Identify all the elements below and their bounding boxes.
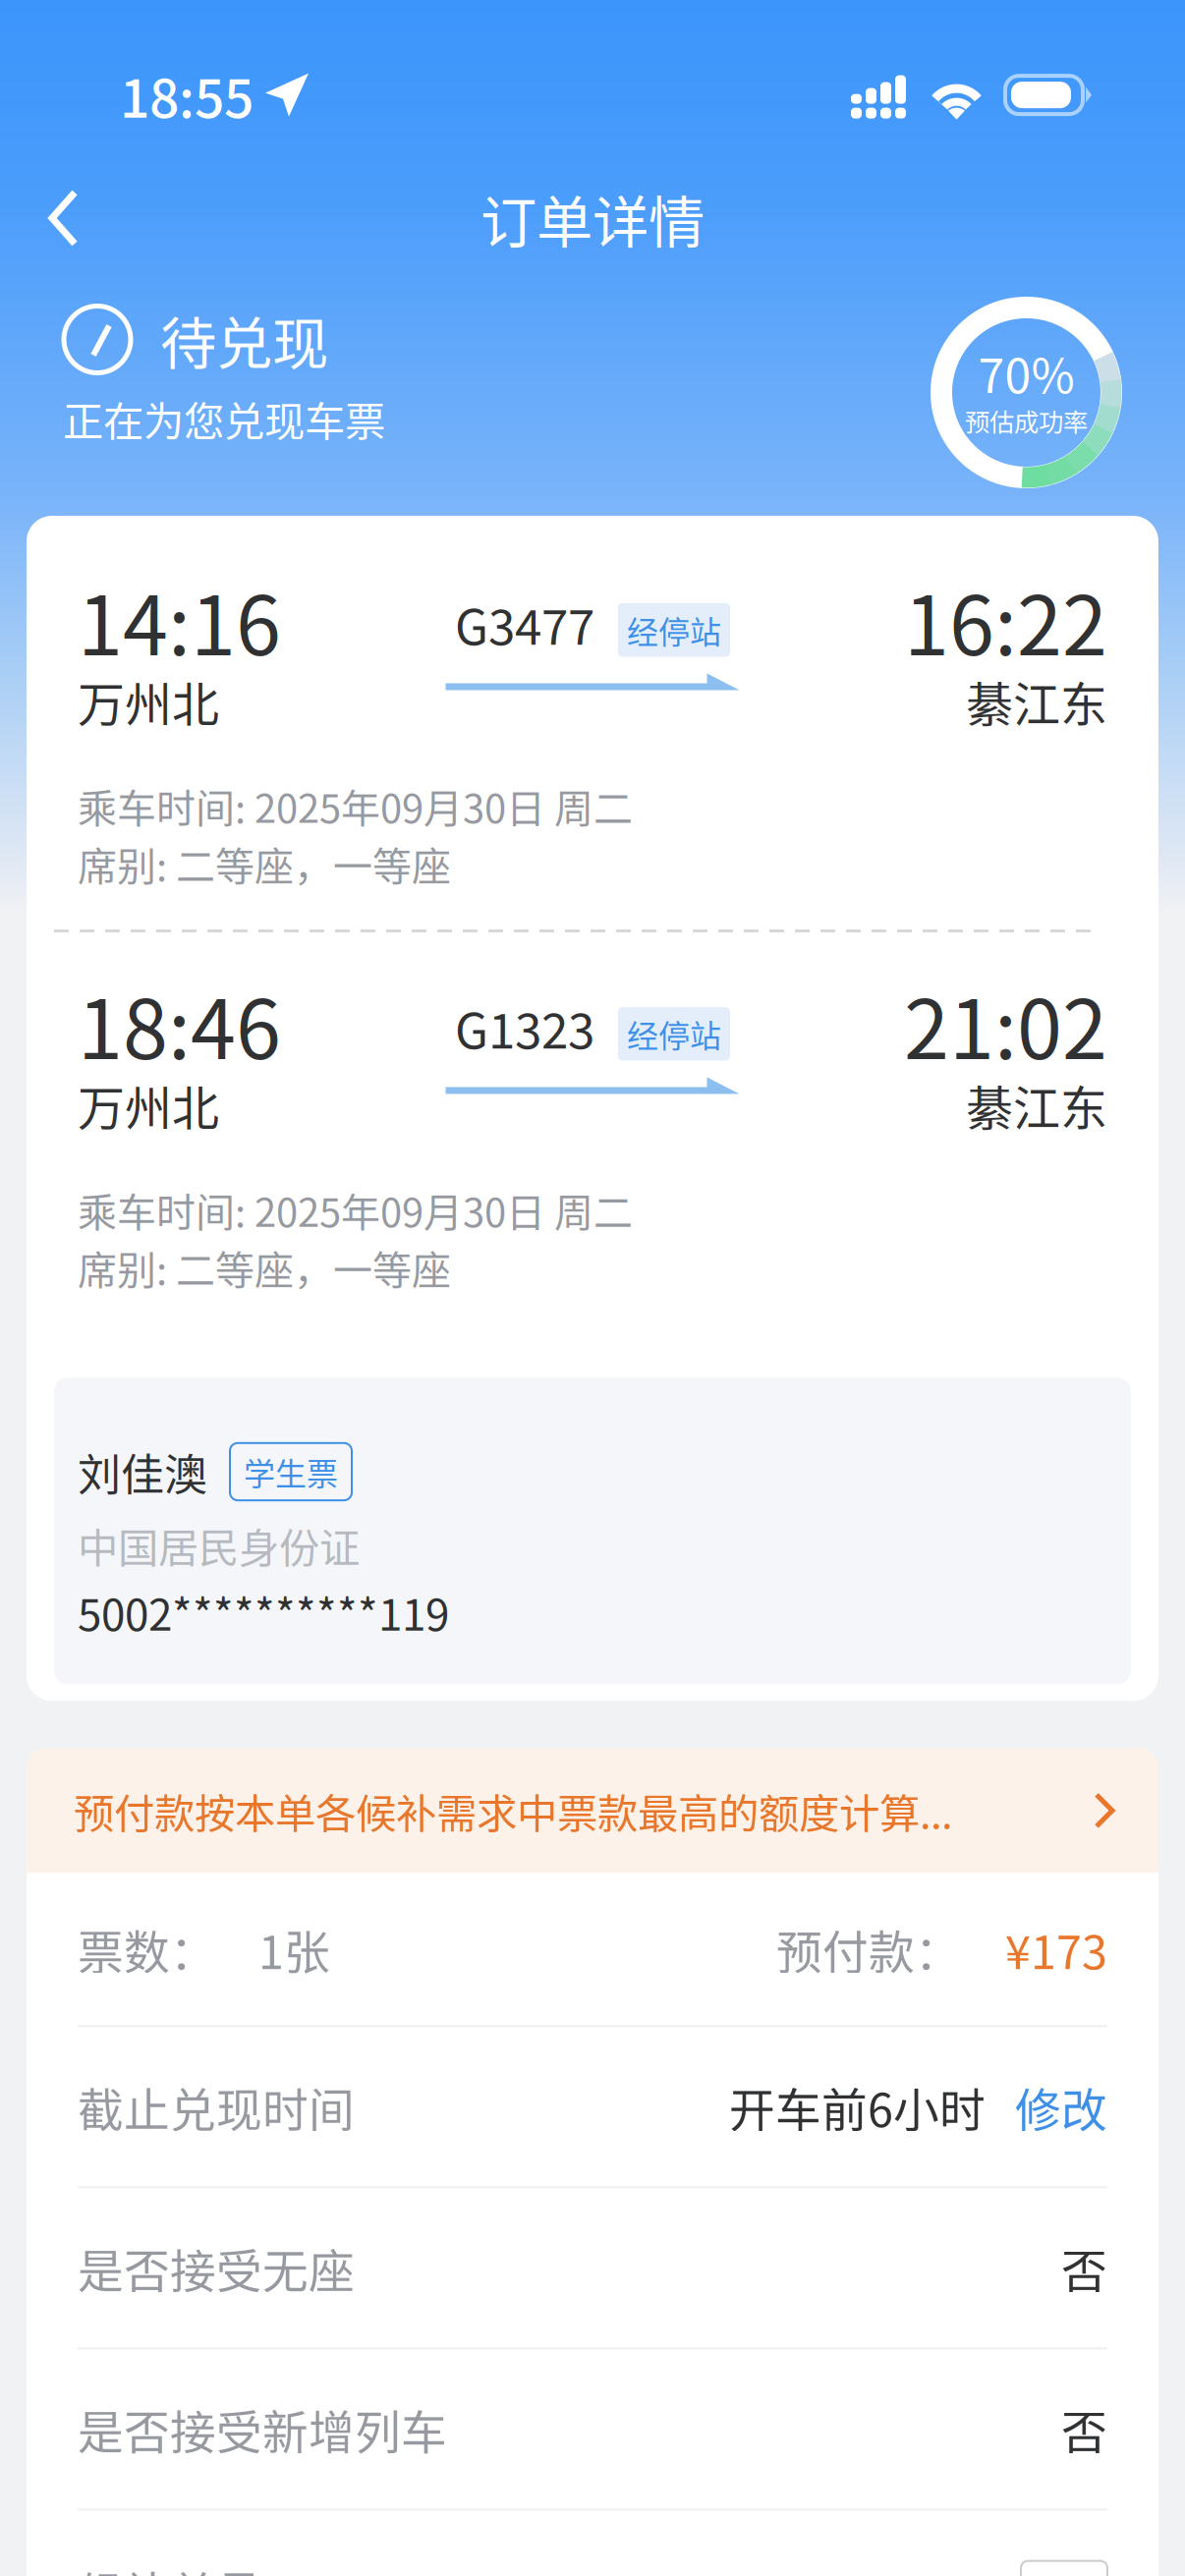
staticText: 候补单号 <box>78 2557 262 2576</box>
staticText: 席别: 二等座，一等座 <box>78 835 451 892</box>
staticText: 18:46 <box>78 965 281 1082</box>
staticText: 正在为您兑现车票 <box>63 389 385 448</box>
staticText: 票数： <box>78 1916 216 1982</box>
staticText: 学生票 <box>244 1449 338 1494</box>
staticText: 70% <box>978 338 1074 407</box>
button[interactable]: 返回 <box>0 166 118 270</box>
staticText: 开车前6小时 <box>729 2074 986 2140</box>
staticText: 席别: 二等座，一等座 <box>78 1239 451 1296</box>
staticText: 是否接受新增列车 <box>78 2396 447 2462</box>
staticText: 截止兑现时间 <box>78 2074 355 2140</box>
staticText: 綦江东 <box>966 1071 1107 1139</box>
staticText: G1323 <box>455 992 594 1062</box>
staticText: 14:16 <box>78 561 281 679</box>
staticText: 乘车时间: 2025年09月30日 周二 <box>78 777 633 834</box>
staticText: 订单详情 <box>480 177 705 259</box>
button[interactable]: 预付款按本单各候补需求中票款最高的额度计算... <box>27 1748 1158 1873</box>
button[interactable]: 是否接受无座 <box>78 2188 1107 2347</box>
staticText: 预付款： <box>776 1916 961 1982</box>
staticText: 乘车时间: 2025年09月30日 周二 <box>78 1181 633 1238</box>
staticText: 16:22 <box>904 561 1107 679</box>
button[interactable]: 截止兑现时间 <box>78 2027 1107 2186</box>
staticText: 1张 <box>258 1916 330 1982</box>
staticText: 中国居民身份证 <box>78 1516 360 1575</box>
staticText: 预估成功率 <box>965 403 1088 439</box>
staticText: 万州北 <box>78 667 219 735</box>
staticText: 刘佳澳 <box>78 1440 207 1503</box>
staticText: G3477 <box>455 588 594 659</box>
staticText: 修改 <box>1015 2074 1107 2140</box>
staticText: 18:55 <box>120 57 254 133</box>
staticText: 经停站 <box>627 1011 721 1057</box>
staticText: 预付款按本单各候补需求中票款最高的额度计算... <box>74 1781 952 1840</box>
staticText: ¥173 <box>1005 1916 1107 1982</box>
staticText: 待兑现 <box>160 299 328 380</box>
staticText: 万州北 <box>78 1071 219 1139</box>
staticText: 否 <box>1061 2396 1107 2462</box>
staticText: 否 <box>1061 2235 1107 2301</box>
staticText: 是否接受无座 <box>78 2235 355 2301</box>
staticText: 经停站 <box>627 607 721 653</box>
staticText: 5002**********119 <box>78 1580 449 1643</box>
button[interactable]: 是否接受新增列车 <box>78 2349 1107 2509</box>
staticText: 21:02 <box>904 965 1107 1082</box>
staticText: 綦江东 <box>966 667 1107 735</box>
